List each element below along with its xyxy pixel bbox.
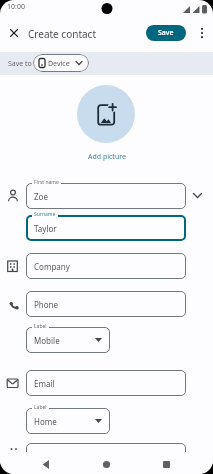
button[interactable]: Save [146,25,186,41]
button[interactable] [26,370,186,396]
staticText: Save to [8,59,32,69]
button[interactable] [26,327,110,353]
staticText: Create contact [28,27,97,41]
staticText: Email [34,378,55,389]
button[interactable] [26,215,186,241]
button[interactable] [99,457,114,472]
button[interactable] [6,25,22,41]
button[interactable] [26,291,186,317]
button[interactable]: Add picture [88,152,126,162]
staticText: Phone [34,299,59,310]
staticText: Save [158,28,174,38]
staticText: Device [48,59,70,69]
staticText: Home [34,416,57,427]
button[interactable] [159,457,174,472]
staticText: Label [34,404,47,411]
staticText: 10:00 [7,2,25,12]
button[interactable] [194,25,209,41]
staticText: Taylor [34,223,57,234]
staticText: Company [34,261,70,272]
button[interactable] [26,253,186,279]
button[interactable] [26,183,186,209]
button[interactable] [77,85,135,143]
button[interactable]: Device [33,54,89,72]
staticText: Zoe [34,191,48,202]
staticText: First name [34,179,59,186]
button[interactable] [39,457,54,472]
button[interactable] [190,188,205,203]
button[interactable] [26,443,186,469]
staticText: Mobile [34,335,60,346]
staticText: Surname [34,211,56,218]
staticText: Label [34,323,47,330]
button[interactable] [26,408,110,434]
